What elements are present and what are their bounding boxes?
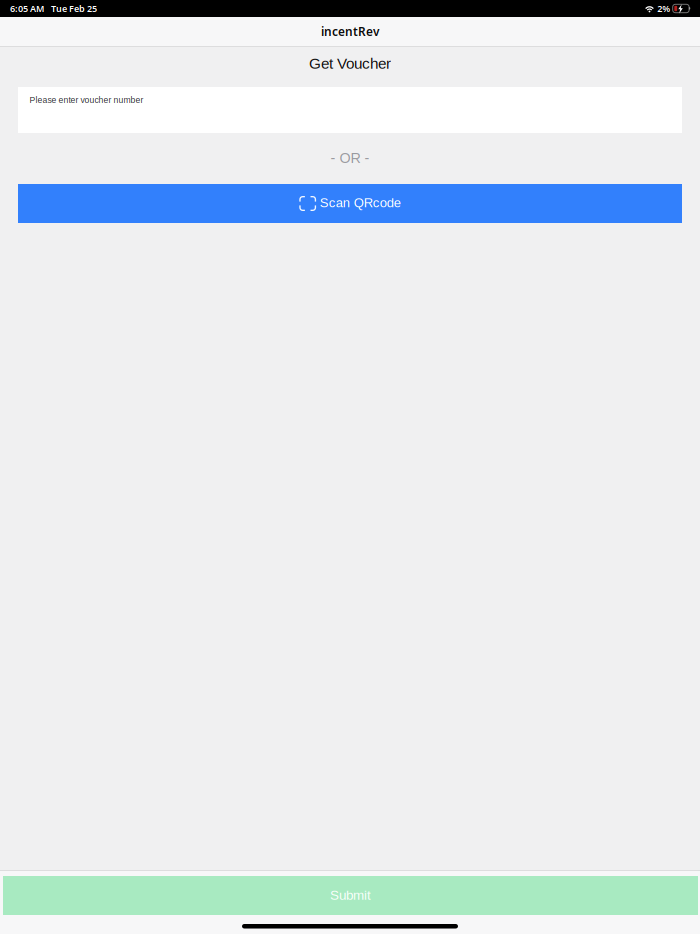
staticText: Submit: [330, 887, 371, 902]
staticText: Get Voucher: [309, 55, 391, 72]
staticText: Please enter voucher number: [29, 95, 143, 105]
button[interactable]: Submit: [3, 876, 698, 915]
staticText: Tue Feb 25: [51, 2, 97, 15]
button[interactable]: Please enter voucher number: [18, 87, 682, 133]
staticText: 2%: [657, 2, 670, 15]
staticText: - OR -: [330, 150, 369, 166]
button[interactable]: Scan QRcode: [18, 184, 682, 223]
staticText: incentRev: [321, 23, 379, 40]
staticText: 6:05 AM: [10, 2, 44, 15]
staticText: Scan QRcode: [320, 195, 401, 210]
